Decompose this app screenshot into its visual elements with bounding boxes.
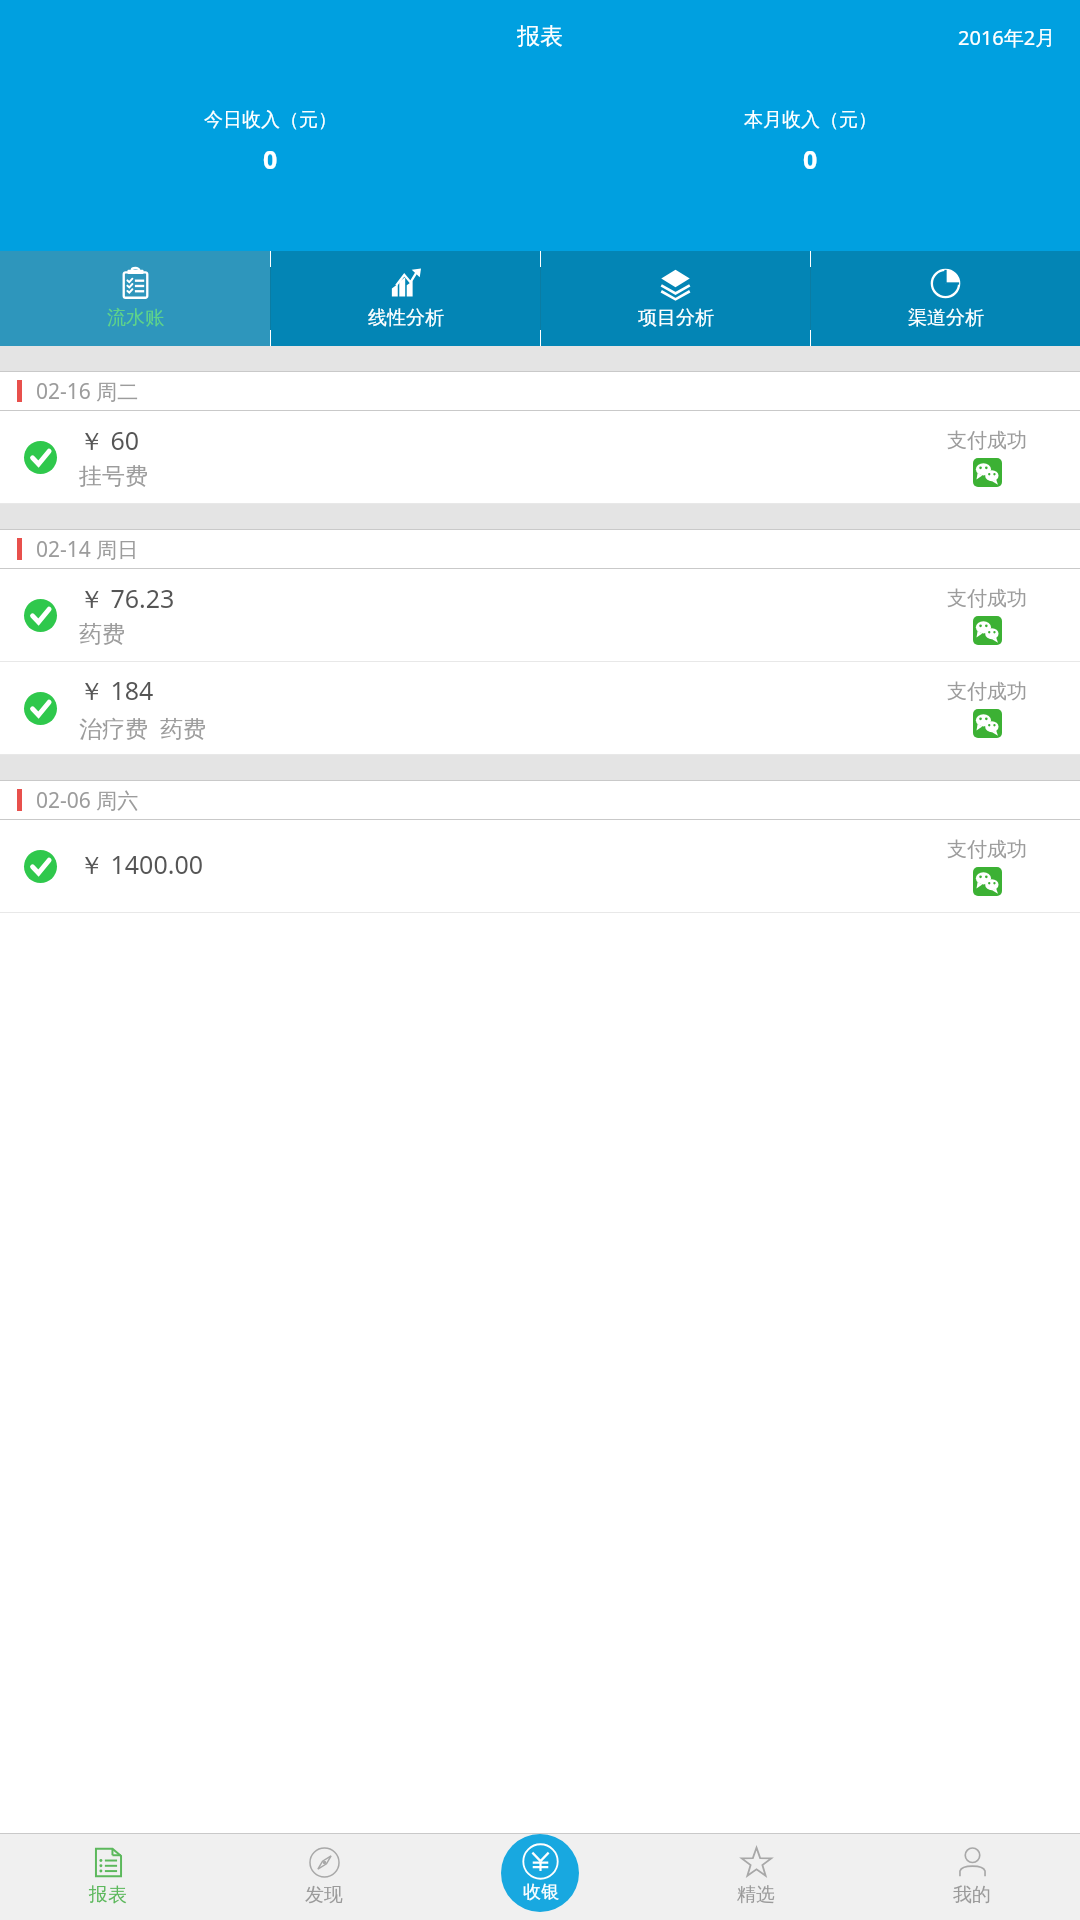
staticText: 报表 — [89, 1883, 127, 1907]
button[interactable]: 项目分析 — [541, 251, 810, 346]
staticText: 项目分析 — [638, 306, 714, 330]
button[interactable]: 线性分析 — [271, 251, 540, 346]
staticText: 我的 — [953, 1883, 991, 1907]
button[interactable]: 流水账 — [0, 251, 270, 346]
staticText: 0 — [263, 142, 278, 176]
staticText: 精选 — [737, 1883, 775, 1907]
button[interactable]: 渠道分析 — [811, 251, 1080, 346]
staticText: 02-14 周日 — [36, 535, 139, 564]
button[interactable]: 报表 — [0, 1833, 216, 1920]
staticText: 2016年2月 — [958, 24, 1056, 51]
button[interactable]: 02-16 周二 — [0, 372, 1080, 410]
staticText: 本月收入（元） — [744, 108, 877, 132]
button[interactable]: 我的 — [864, 1833, 1080, 1920]
staticText: 流水账 — [107, 306, 164, 330]
button[interactable]: ￥ 184 — [0, 662, 1080, 754]
button[interactable]: ￥ 60 — [0, 411, 1080, 503]
staticText: 发现 — [305, 1883, 343, 1907]
staticText: 支付成功 — [947, 679, 1027, 704]
staticText: 02-16 周二 — [36, 377, 139, 406]
staticText: ￥ 184 — [79, 673, 154, 707]
staticText: 药费 — [79, 620, 125, 649]
staticText: 0 — [803, 142, 818, 176]
button[interactable]: 02-14 周日 — [0, 530, 1080, 568]
staticText: 线性分析 — [368, 306, 444, 330]
staticText: 02-06 周六 — [36, 786, 139, 815]
button[interactable]: 发现 — [216, 1833, 432, 1920]
staticText: ￥ 60 — [79, 423, 140, 457]
button[interactable]: 02-06 周六 — [0, 781, 1080, 819]
staticText: 支付成功 — [947, 428, 1027, 453]
staticText: ￥ 76.23 — [79, 581, 175, 615]
staticText: 挂号费 — [79, 462, 148, 491]
button[interactable]: ￥ 76.23 — [0, 569, 1080, 661]
staticText: 支付成功 — [947, 586, 1027, 611]
staticText: 收银 — [523, 1881, 559, 1904]
button[interactable]: 收银 — [501, 1834, 579, 1912]
staticText: 渠道分析 — [908, 306, 984, 330]
button[interactable]: ￥ 1400.00 — [0, 820, 1080, 912]
staticText: 报表 — [517, 22, 563, 51]
staticText: 支付成功 — [947, 837, 1027, 862]
staticText: 今日收入（元） — [204, 108, 337, 132]
staticText: 治疗费 药费 — [79, 712, 206, 743]
staticText: ￥ 1400.00 — [79, 847, 204, 881]
button[interactable]: 精选 — [648, 1833, 864, 1920]
